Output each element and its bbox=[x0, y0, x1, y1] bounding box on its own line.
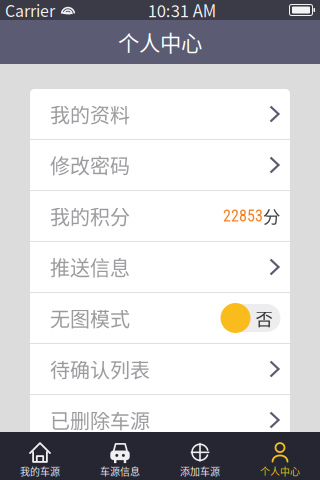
button[interactable]: 我的车源 bbox=[0, 432, 80, 480]
button[interactable]: 修改密码 bbox=[30, 140, 290, 190]
button[interactable]: 个人中心 bbox=[240, 432, 320, 480]
button[interactable]: 我的资料 bbox=[30, 89, 290, 139]
button[interactable]: 推送信息 bbox=[30, 242, 290, 292]
staticText: 待确认列表 bbox=[50, 354, 150, 383]
staticText: 修改密码 bbox=[50, 150, 130, 179]
staticText: 个人中心 bbox=[260, 464, 300, 478]
button[interactable]: 已删除车源 bbox=[30, 395, 290, 445]
staticText: 我的积分 bbox=[50, 201, 130, 230]
staticText: 我的资料 bbox=[50, 99, 130, 128]
button[interactable]: 车源信息 bbox=[80, 432, 160, 480]
button[interactable]: 无图模式 bbox=[30, 293, 290, 343]
staticText: 无图模式 bbox=[50, 303, 130, 332]
staticText: 推送信息 bbox=[50, 252, 130, 281]
staticText: 添加车源 bbox=[180, 464, 220, 478]
staticText: 分 bbox=[263, 203, 280, 229]
staticText: Carrier bbox=[5, 0, 55, 22]
staticText: 车源信息 bbox=[100, 464, 140, 478]
button[interactable]: 待确认列表 bbox=[30, 344, 290, 394]
button[interactable]: 我的积分 bbox=[30, 191, 290, 241]
staticText: 10:31 AM bbox=[148, 0, 217, 22]
staticText: 个人中心 bbox=[118, 27, 202, 57]
staticText: 22853 bbox=[223, 207, 263, 225]
staticText: 我的车源 bbox=[20, 464, 60, 478]
staticText: 否 bbox=[255, 305, 272, 331]
staticText: 已删除车源 bbox=[50, 405, 150, 434]
button[interactable]: 添加车源 bbox=[160, 432, 240, 480]
